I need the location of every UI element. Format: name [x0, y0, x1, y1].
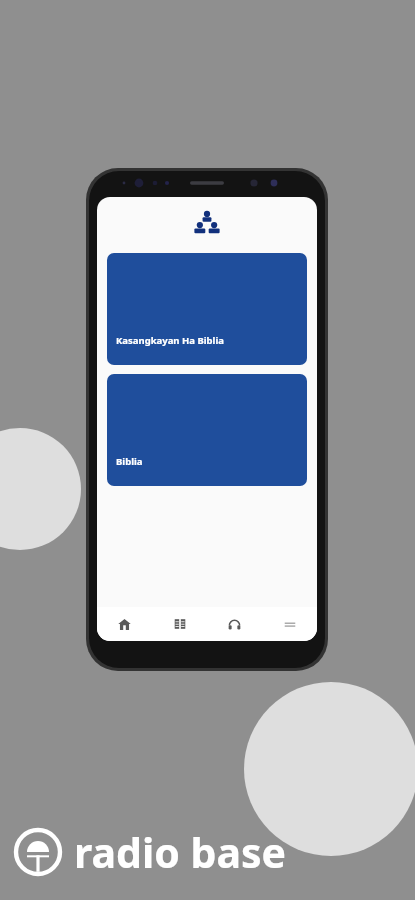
- button[interactable]: Biblia: [107, 374, 307, 486]
- staticText: Biblia: [116, 455, 143, 468]
- staticText: radio base: [74, 824, 287, 880]
- button[interactable]: Kasangkayan Ha Biblia: [107, 253, 307, 365]
- button[interactable]: Menu: [262, 607, 317, 641]
- staticText: Kasangkayan Ha Biblia: [116, 334, 224, 347]
- button[interactable]: Home: [97, 607, 152, 641]
- button[interactable]: Group: [97, 197, 317, 247]
- button[interactable]: Audio: [207, 607, 262, 641]
- other: radio base logo: [13, 827, 63, 877]
- button[interactable]: Library: [152, 607, 207, 641]
